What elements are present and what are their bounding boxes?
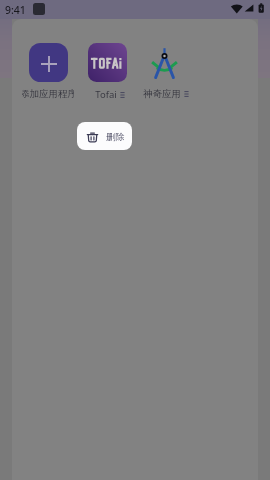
button[interactable]: Tofai: [81, 43, 133, 101]
button[interactable]: 删除: [77, 122, 132, 150]
staticText: 9:41: [5, 3, 26, 17]
button[interactable]: 神奇应用: [147, 43, 186, 82]
staticText: 删除: [106, 131, 125, 143]
staticText: 添加应用程序: [22, 88, 74, 100]
button[interactable]: 神奇应用: [140, 43, 192, 100]
button[interactable]: 添加应用程序: [22, 43, 74, 100]
staticText: Tofai: [95, 88, 117, 101]
staticText: 神奇应用: [143, 88, 181, 100]
button[interactable]: Tofai: [88, 43, 127, 82]
button[interactable]: 添加应用程序: [29, 43, 68, 82]
